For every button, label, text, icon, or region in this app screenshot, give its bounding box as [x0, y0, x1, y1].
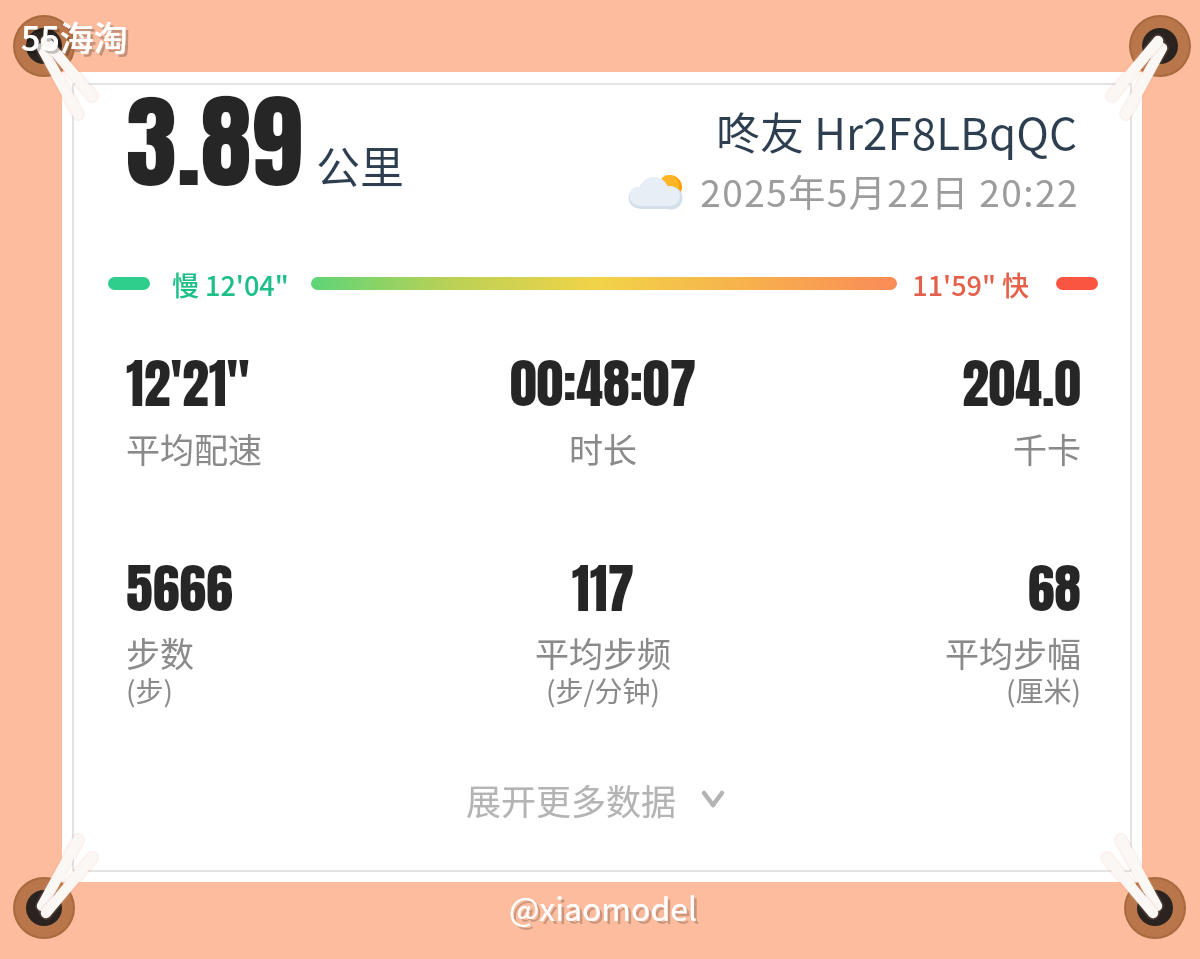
- staticText: (步): [126, 670, 426, 711]
- staticText: 55海淘: [24, 15, 131, 64]
- staticText: 00:48:07: [426, 342, 780, 423]
- staticText: (厘米): [726, 670, 1081, 711]
- staticText: 204.0: [726, 342, 1081, 423]
- staticText: 展开更多数据: [466, 774, 677, 825]
- staticText: @xiaomodel: [421, 887, 791, 933]
- staticText: 咚友 Hr2F8LBqQC: [662, 99, 1077, 163]
- other: Weather: [625, 172, 689, 236]
- staticText: 平均步频: [426, 628, 780, 677]
- staticText: (步/分钟): [426, 670, 780, 711]
- staticText: 12'21": [126, 342, 426, 423]
- staticText: 68: [726, 547, 1081, 628]
- button[interactable]: 展开更多数据: [466, 769, 766, 829]
- staticText: 3.89: [126, 64, 303, 219]
- staticText: 11'59" 快: [907, 265, 1029, 304]
- staticText: 55海淘: [21, 12, 128, 61]
- staticText: 步数: [126, 628, 426, 677]
- staticText: 千卡: [726, 424, 1081, 473]
- staticText: 5666: [126, 547, 426, 628]
- staticText: 平均配速: [126, 424, 426, 473]
- staticText: 平均步幅: [726, 628, 1081, 677]
- staticText: 公里: [316, 133, 404, 197]
- staticText: 117: [426, 547, 780, 628]
- staticText: 2025年5月22日 20:22: [662, 164, 1079, 218]
- staticText: @xiaomodel: [418, 884, 788, 930]
- staticText: 时长: [426, 424, 780, 473]
- staticText: 慢 12'04": [172, 265, 289, 304]
